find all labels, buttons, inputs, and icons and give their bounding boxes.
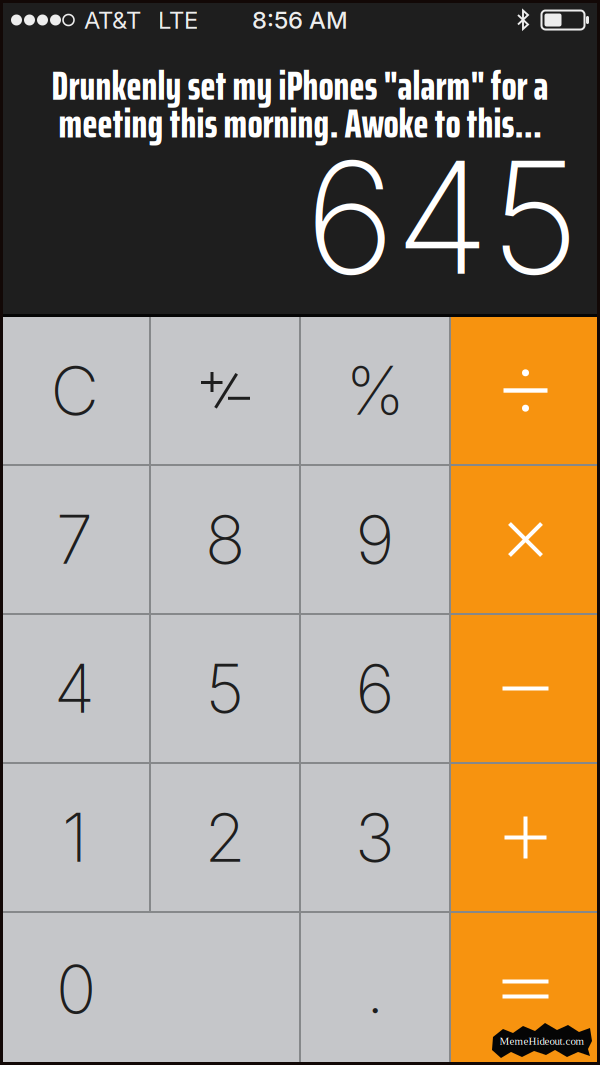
button[interactable]: 5 <box>151 615 299 762</box>
staticText: % <box>345 350 404 431</box>
button[interactable]: Divide <box>451 317 600 464</box>
button[interactable]: 8 <box>151 466 299 613</box>
staticText: 0 <box>56 949 96 1029</box>
staticText: 7 <box>56 499 93 580</box>
staticText: C <box>50 350 98 431</box>
staticText: 5 <box>205 648 244 729</box>
staticText: LTE <box>158 5 198 34</box>
staticText: 645 <box>305 124 579 311</box>
button[interactable]: 1 <box>0 764 149 911</box>
staticText: . <box>366 949 384 1029</box>
staticText: 4 <box>54 648 95 729</box>
button[interactable]: 2 <box>151 764 299 911</box>
button[interactable]: Plus minus <box>151 317 299 464</box>
staticText: MemeHideout.com <box>499 1035 584 1047</box>
staticText: AT&T <box>84 5 141 34</box>
button[interactable]: Multiply <box>451 466 600 613</box>
button[interactable]: Equals <box>451 913 600 1065</box>
staticText: Drunkenly set my iPhones "alarm" for a <box>51 55 548 117</box>
button[interactable]: 9 <box>301 466 449 613</box>
button[interactable]: Minus <box>451 615 600 762</box>
button[interactable]: 7 <box>0 466 149 613</box>
button[interactable]: 3 <box>301 764 449 911</box>
staticText: 8 <box>205 499 245 580</box>
button[interactable]: % <box>301 317 449 464</box>
staticText: 6 <box>355 648 394 729</box>
button[interactable]: 0 <box>0 913 299 1065</box>
staticText: 9 <box>355 499 394 580</box>
staticText: 2 <box>204 797 245 878</box>
staticText: 3 <box>355 797 395 878</box>
staticText: 1 <box>62 797 87 878</box>
button[interactable]: 6 <box>301 615 449 762</box>
staticText: meeting this morning. Awoke to this… <box>58 93 541 155</box>
button[interactable]: Plus <box>451 764 600 911</box>
button[interactable]: 4 <box>0 615 149 762</box>
button[interactable]: C <box>0 317 149 464</box>
staticText: 8:56 AM <box>252 5 348 34</box>
button[interactable]: . <box>301 913 449 1065</box>
